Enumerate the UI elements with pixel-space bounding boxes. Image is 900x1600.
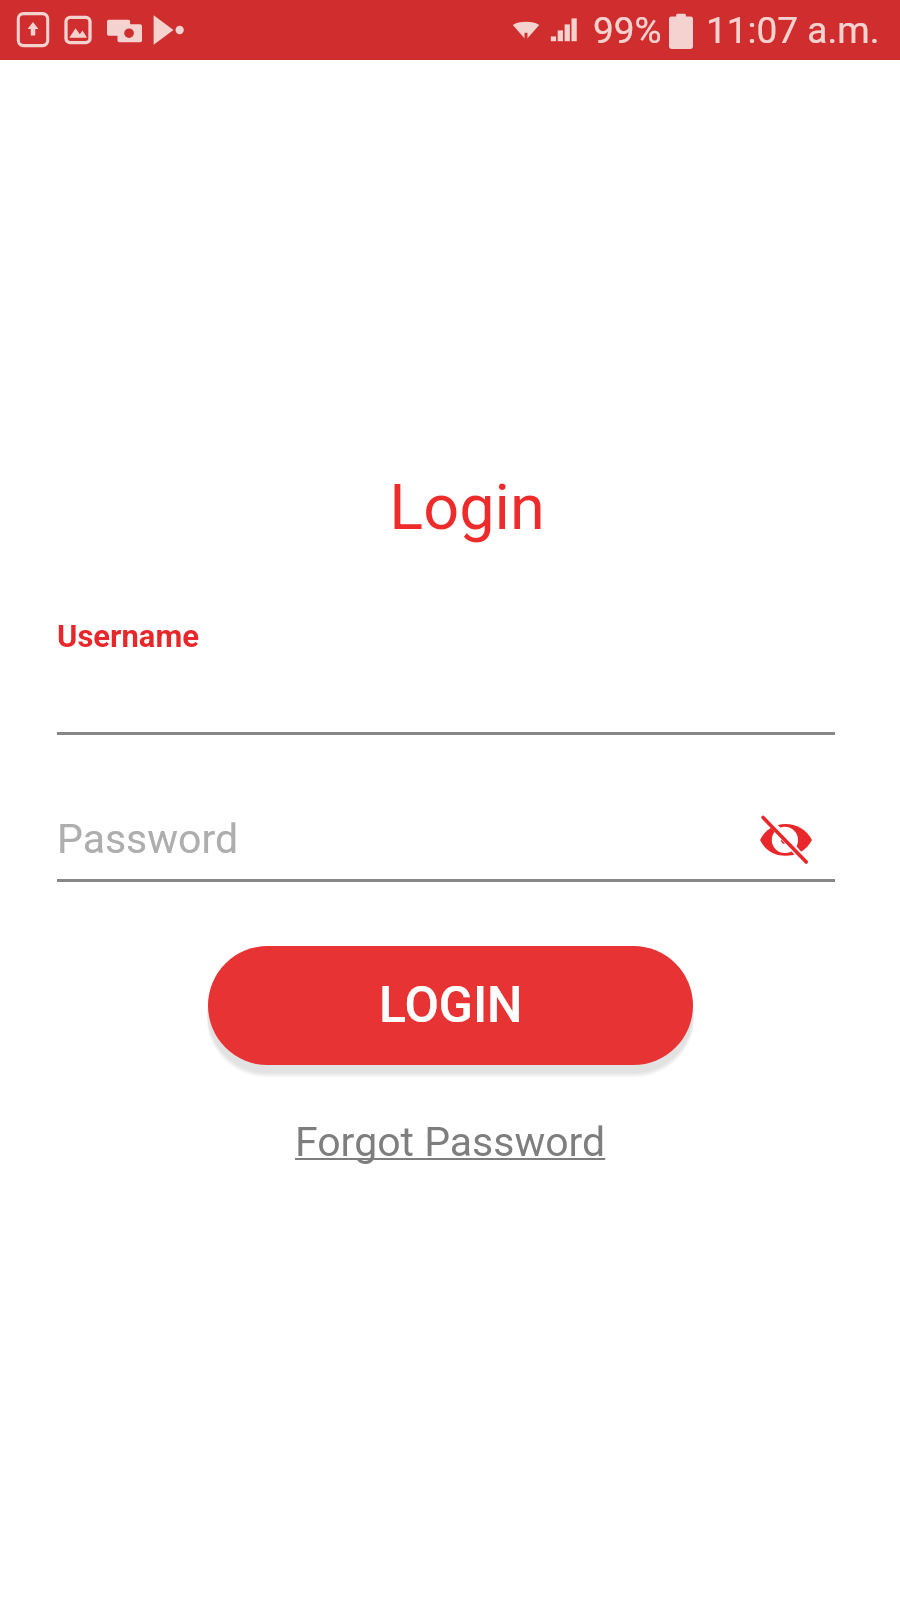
button[interactable]: Forgot Password: [289, 1116, 612, 1168]
staticText: 11:07 a.m.: [706, 9, 880, 52]
staticText: 99%: [593, 9, 662, 52]
button[interactable]: Show password: [758, 811, 814, 867]
staticText: Password: [57, 815, 239, 863]
staticText: Forgot Password: [295, 1118, 606, 1166]
staticText: Login: [34, 471, 900, 545]
staticText: Username: [57, 618, 200, 654]
button[interactable]: Username: [57, 618, 835, 735]
staticText: LOGIN: [379, 976, 523, 1035]
button[interactable]: Password: [57, 815, 835, 871]
button[interactable]: LOGIN: [208, 946, 693, 1065]
